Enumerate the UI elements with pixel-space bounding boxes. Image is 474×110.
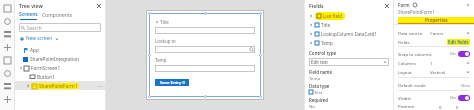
button[interactable]: Collapse panel <box>464 1 471 8</box>
button[interactable]: 0 <box>439 103 453 110</box>
button[interactable]: Variables <box>1 80 13 92</box>
staticText: Field name <box>309 69 332 75</box>
button[interactable]: Temp <box>309 38 390 47</box>
button[interactable] <box>155 46 255 53</box>
staticText: 1 <box>430 60 433 66</box>
button[interactable]: Home <box>1 15 13 27</box>
staticText: Required <box>309 97 328 103</box>
staticText: Temp <box>309 75 321 81</box>
button[interactable]: LookupColumn DataCard1 (custom) <box>309 29 390 38</box>
staticText: Data source <box>398 30 423 36</box>
button[interactable]: Layout <box>398 67 470 76</box>
button[interactable]: Career Opportunitie... <box>430 29 470 37</box>
button[interactable]: Data source <box>398 28 470 37</box>
staticText: Components <box>42 12 73 19</box>
staticText: Button1 <box>37 74 55 80</box>
staticText: Snap to columns <box>398 51 432 57</box>
staticText: New screen <box>26 35 53 42</box>
staticText: Lookup to <box>155 38 176 44</box>
staticText: Position <box>398 103 415 109</box>
button[interactable]: Vertical <box>430 68 470 76</box>
button[interactable]: Button1 <box>15 72 105 81</box>
staticText: Properties <box>425 17 448 23</box>
staticText: SharePointIntegration <box>30 56 79 62</box>
button[interactable]: Insert <box>1 28 13 40</box>
button[interactable]: SharePointForm1 <box>15 81 105 90</box>
button[interactable]: Close <box>95 2 102 9</box>
staticText: Control type <box>309 50 337 56</box>
staticText: Edit fields <box>448 39 469 45</box>
staticText: SharePointForm1 <box>398 9 435 15</box>
button[interactable]: Components <box>42 12 73 19</box>
button[interactable]: Visible <box>398 93 470 102</box>
staticText: Fields <box>398 39 410 45</box>
staticText: Data type <box>309 83 330 89</box>
button[interactable]: 1 <box>430 59 470 67</box>
staticText: Last field <box>323 13 343 19</box>
staticText: Search <box>27 25 42 31</box>
button[interactable]: SharePointIntegration <box>15 54 105 63</box>
button[interactable] <box>155 27 255 34</box>
staticText: App <box>30 47 39 53</box>
staticText: Title <box>160 19 169 25</box>
staticText: Form <box>398 2 410 8</box>
staticText: Temp <box>321 40 333 46</box>
staticText: Edit text <box>311 59 328 65</box>
button[interactable]: Data <box>1 41 13 53</box>
button[interactable]: Search <box>19 23 101 32</box>
staticText: Fields <box>309 2 324 9</box>
staticText: Default mode <box>398 82 426 88</box>
button[interactable]: Default mode <box>398 80 470 89</box>
staticText: Title <box>321 22 330 28</box>
staticText: Text <box>314 89 323 95</box>
staticText: Career Opportunitie... <box>430 30 448 36</box>
staticText: Screens <box>19 11 38 18</box>
staticText: Visible <box>398 95 412 101</box>
button[interactable]: New screen <box>20 35 59 42</box>
button[interactable]: Toggle on <box>458 95 470 101</box>
button[interactable]: Snap to columns <box>398 49 470 58</box>
staticText: 0 <box>456 104 459 110</box>
button[interactable]: Position <box>398 102 470 110</box>
button[interactable]: Search <box>1 93 13 105</box>
staticText: 0 <box>439 104 442 110</box>
staticText: On <box>450 51 456 57</box>
staticText: Columns <box>398 60 416 66</box>
staticText: LookupColumn DataCard1 (custom) <box>321 31 390 37</box>
button[interactable]: Screens <box>19 11 42 20</box>
staticText: ··· <box>98 83 102 89</box>
button[interactable]: Columns <box>398 58 470 67</box>
staticText: SharePointForm1 <box>39 83 78 89</box>
button[interactable]: FormScreen1 <box>15 63 105 72</box>
button[interactable]: 0 <box>456 103 470 110</box>
button[interactable]: Edit fields <box>448 39 469 45</box>
staticText: FormScreen1 <box>31 65 61 71</box>
button[interactable]: Properties <box>398 17 474 24</box>
staticText: Temp <box>155 57 167 63</box>
staticText: Save Entry 0 <box>160 80 185 86</box>
button[interactable]: Toggle on <box>458 51 470 57</box>
button[interactable]: Title <box>149 13 261 97</box>
staticText: Vertical <box>430 69 445 75</box>
button[interactable]: Title <box>309 20 390 29</box>
button[interactable]: Fields <box>398 37 470 46</box>
button[interactable]: Tree view <box>1 67 13 79</box>
button[interactable]: Info <box>412 2 418 8</box>
button[interactable]: Menu <box>1 2 13 14</box>
staticText: No <box>309 103 315 109</box>
button[interactable]: Edit text <box>309 58 389 66</box>
button[interactable]: App <box>15 45 105 54</box>
button[interactable]: Media <box>1 54 13 66</box>
staticText: On <box>450 95 456 101</box>
staticText: New <box>461 82 470 88</box>
button[interactable]: Last field <box>309 11 390 20</box>
button[interactable] <box>155 65 255 72</box>
staticText: Layout <box>398 69 412 75</box>
staticText: Tree view <box>19 2 43 9</box>
button[interactable]: Save Entry 0 <box>155 79 189 86</box>
button[interactable]: Close fields <box>383 2 390 9</box>
